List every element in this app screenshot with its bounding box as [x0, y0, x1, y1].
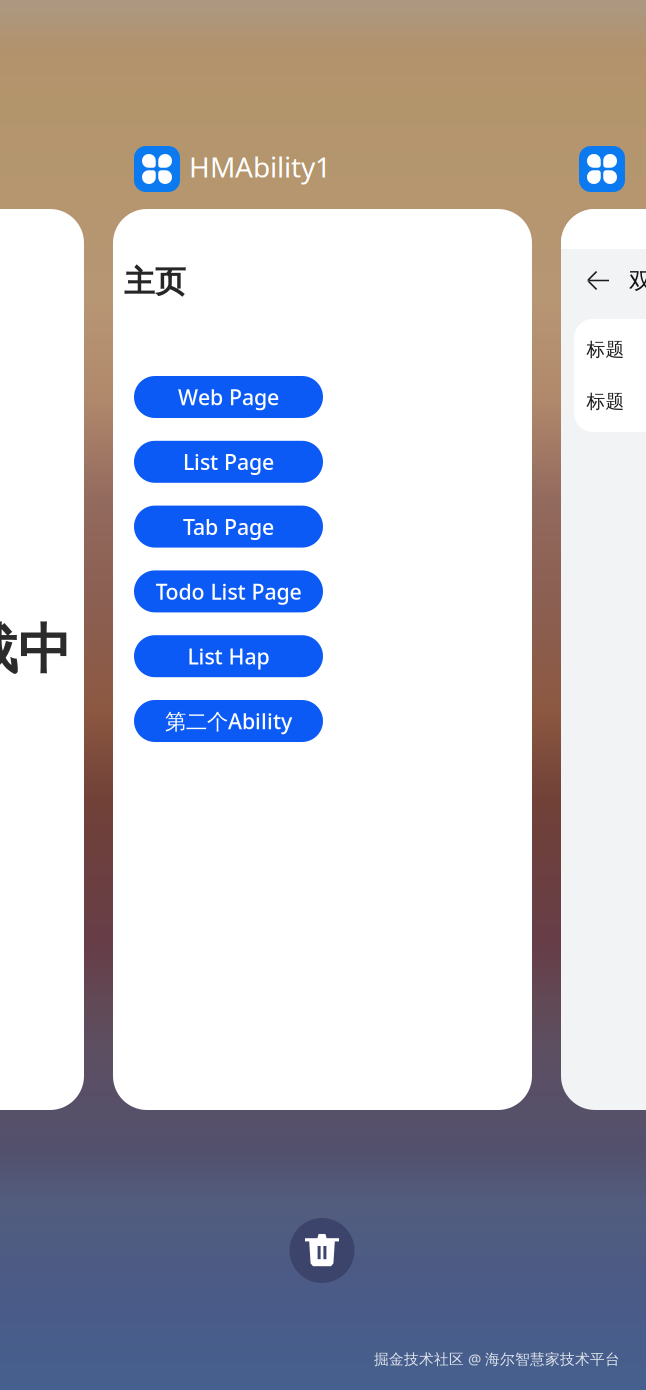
- staticText: Web Page: [178, 383, 279, 411]
- staticText: Todo List Page: [155, 577, 301, 605]
- staticText: 标题: [586, 390, 624, 413]
- button[interactable]: Todo List Page: [134, 570, 323, 612]
- button[interactable]: List Hap: [134, 635, 323, 677]
- staticText: HMAbility1: [189, 148, 331, 185]
- button[interactable]: Web Page: [134, 376, 323, 418]
- staticText: Tab Page: [183, 512, 274, 541]
- button[interactable]: Tab Page: [134, 506, 323, 548]
- staticText: Hello 加载中: [0, 611, 71, 683]
- staticText: List Page: [183, 448, 274, 476]
- button[interactable]: Clear all tasks: [289, 1218, 354, 1283]
- staticText: 标题: [586, 338, 624, 361]
- staticText: List Hap: [187, 642, 269, 670]
- button[interactable]: List Page: [134, 441, 323, 483]
- button[interactable]: 第二个Ability: [134, 700, 323, 742]
- staticText: 双向数据绑定: [629, 267, 646, 295]
- staticText: 第二个Ability: [165, 707, 292, 735]
- staticText: 掘金技术社区 @ 海尔智慧家技术平台: [374, 1349, 620, 1368]
- staticText: 主页: [124, 263, 186, 301]
